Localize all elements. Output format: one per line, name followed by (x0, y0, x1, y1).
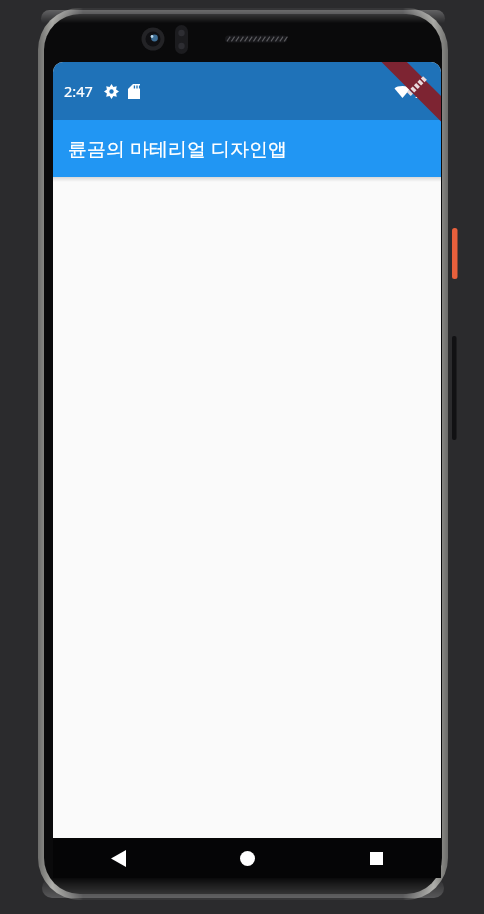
button[interactable]: Back (53, 838, 183, 878)
button[interactable]: Home (183, 838, 312, 878)
staticText: 륜곰의 마테리얼 디자인앱 (68, 136, 287, 162)
button[interactable]: Recent apps (312, 838, 441, 878)
button[interactable]: 륜곰의 마테리얼 디자인앱 (53, 120, 441, 177)
staticText: 2:47 (64, 81, 93, 101)
